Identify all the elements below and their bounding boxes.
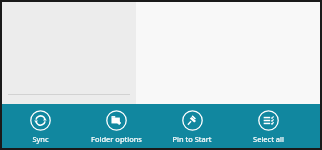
button[interactable]: Select all <box>230 104 306 148</box>
staticText: Sync <box>32 134 49 144</box>
button[interactable]: Sync <box>2 104 78 148</box>
button[interactable]: Folder options <box>78 104 154 148</box>
staticText: Select all <box>253 134 284 144</box>
button[interactable]: Pin to Start <box>154 104 230 148</box>
staticText: Folder options <box>91 134 142 144</box>
staticText: Pin to Start <box>172 134 212 144</box>
